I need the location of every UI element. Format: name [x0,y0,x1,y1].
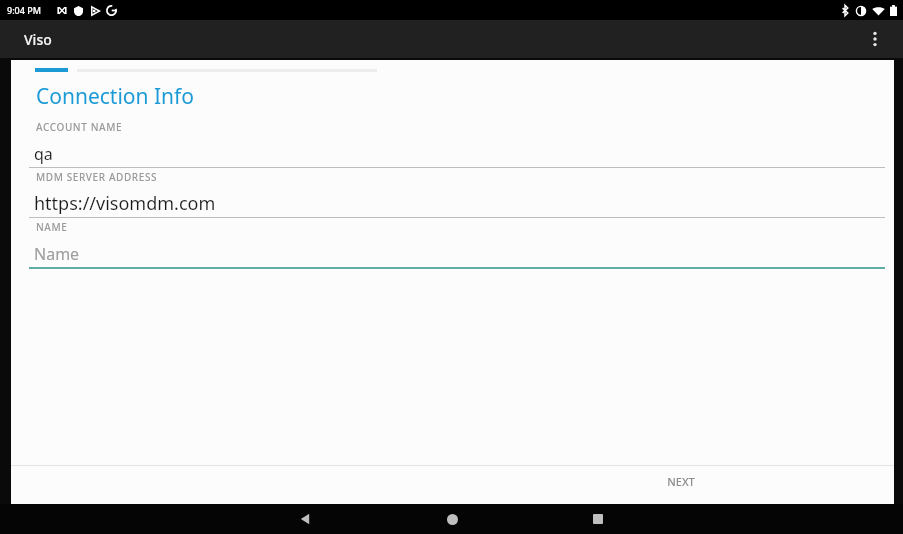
button[interactable]: NEXT [636,467,726,495]
button[interactable]: https://visomdm.com [29,190,885,217]
staticText: NAME [36,220,68,234]
button[interactable]: Back [283,504,327,534]
staticText: https://visomdm.com [34,191,216,216]
staticText: ACCOUNT NAME [36,120,123,134]
staticText: qa [34,143,53,165]
button[interactable]: More options [861,25,889,53]
staticText: MDM SERVER ADDRESS [36,170,158,184]
button[interactable]: Name [29,240,885,267]
button[interactable]: Home [430,504,474,534]
staticText: 9:04 PM [7,4,41,16]
staticText: NEXT [667,474,695,489]
button[interactable]: Recent apps [576,504,620,534]
staticText: Viso [24,30,52,49]
staticText: Connection Info [36,82,195,111]
staticText: Name [34,243,80,265]
button[interactable]: qa [29,140,885,167]
